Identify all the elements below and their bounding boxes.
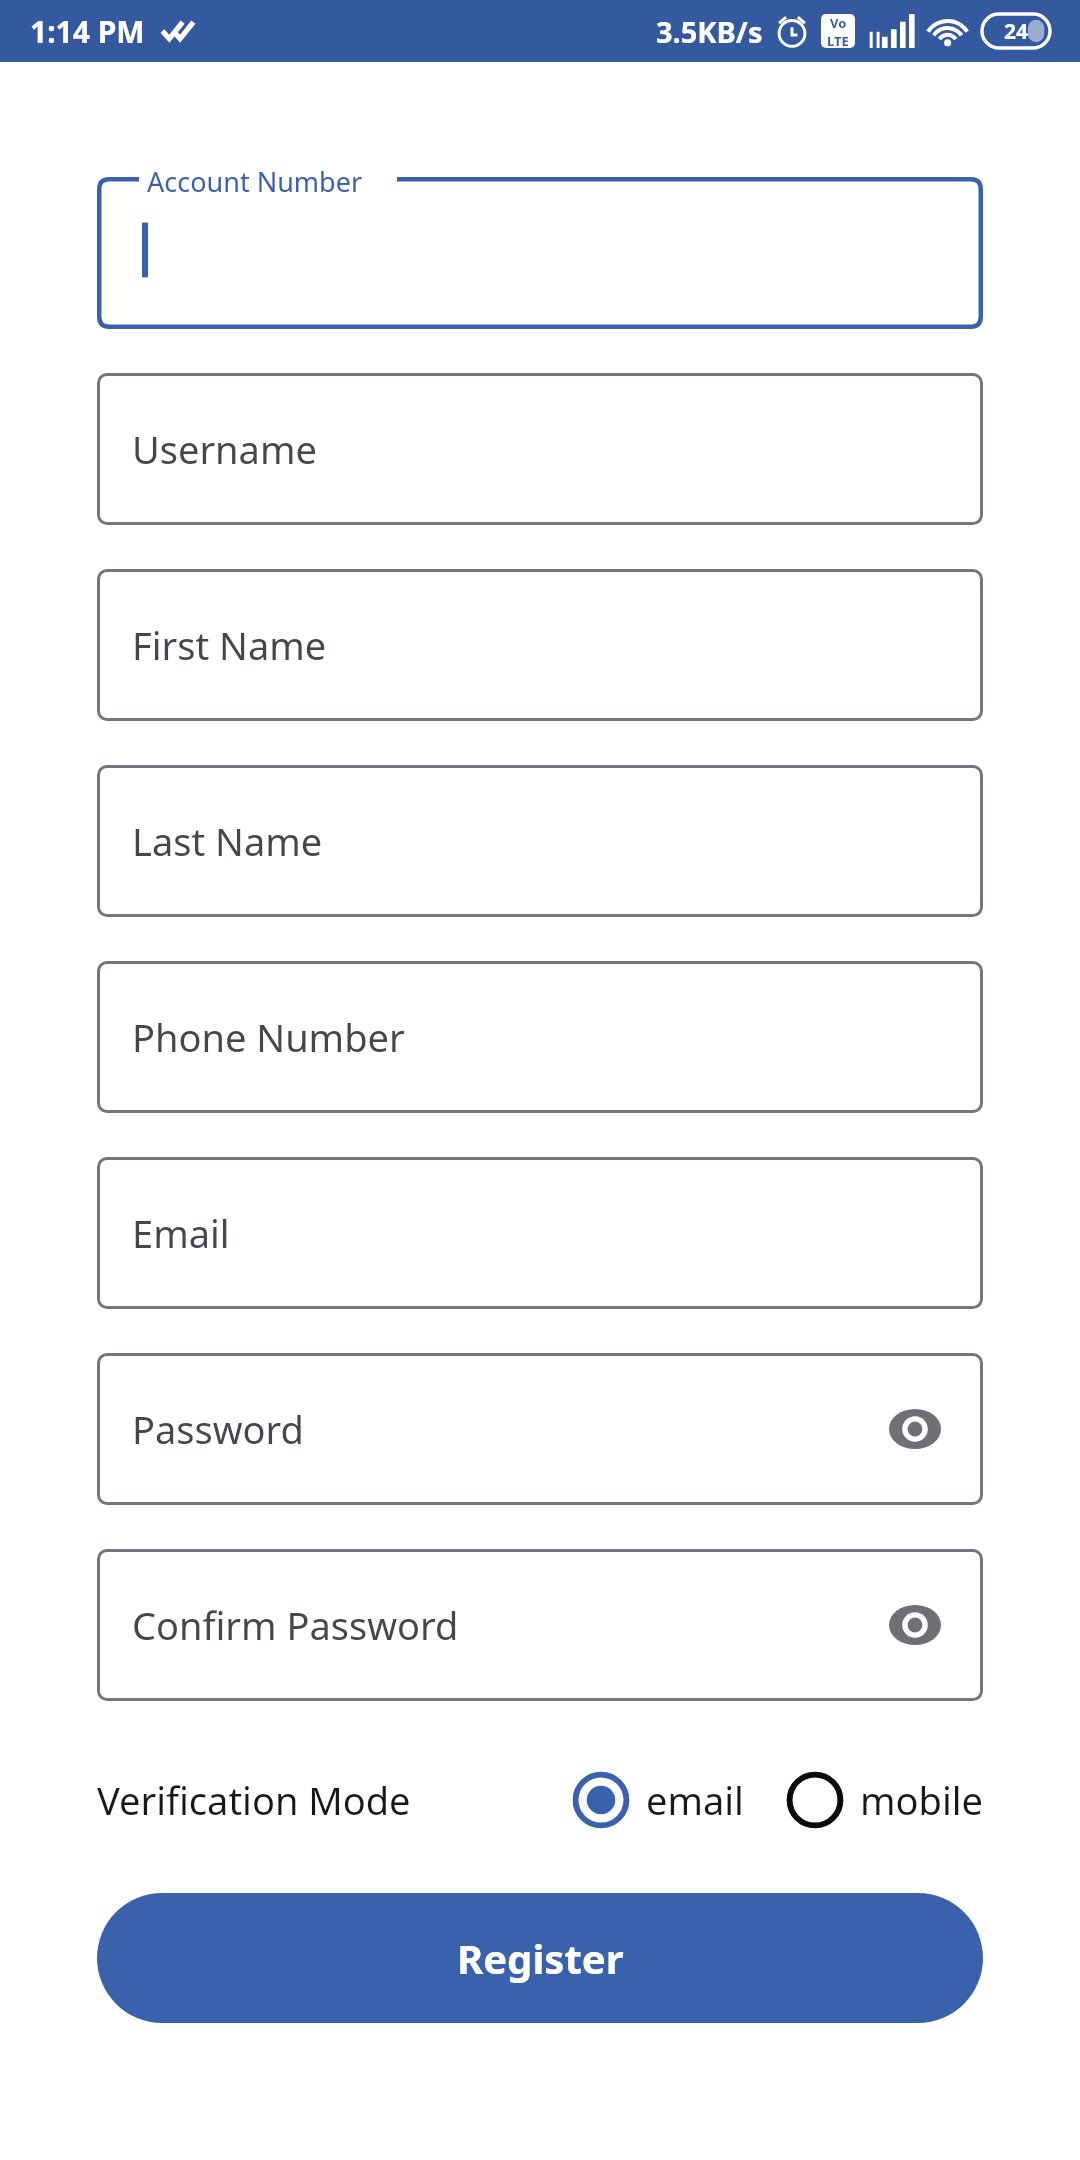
staticText: Last Name [132,815,323,867]
button[interactable]: email [570,1769,744,1831]
button[interactable]: Register [97,1893,983,2023]
staticText: 24 [1004,17,1029,46]
staticText: LTE [827,32,849,48]
staticText: First Name [132,619,327,671]
staticText: Verification Mode [97,1774,411,1826]
button[interactable]: Toggle password visibility [883,1593,947,1657]
staticText: Register [457,1931,624,1985]
button[interactable]: Confirm Password [97,1549,983,1701]
staticText: mobile [860,1774,983,1826]
staticText: Password [132,1403,304,1455]
staticText: Account Number [147,163,363,200]
staticText: Username [132,423,317,475]
staticText: 3.5KB/s [656,12,763,51]
button[interactable]: First Name [97,569,983,721]
button[interactable]: mobile [784,1769,983,1831]
staticText: Confirm Password [132,1599,459,1651]
button[interactable]: Phone Number [97,961,983,1113]
button[interactable]: Last Name [97,765,983,917]
staticText: Email [132,1207,230,1259]
button[interactable]: Username [97,373,983,525]
staticText: Vo [830,14,847,32]
staticText: 1:14 PM [30,11,145,52]
button[interactable]: Password [97,1353,983,1505]
button[interactable]: Email [97,1157,983,1309]
staticText: Phone Number [132,1011,405,1063]
button[interactable]: Toggle password visibility [883,1397,947,1461]
staticText: email [646,1774,744,1826]
button[interactable]: Account Number [97,177,983,329]
